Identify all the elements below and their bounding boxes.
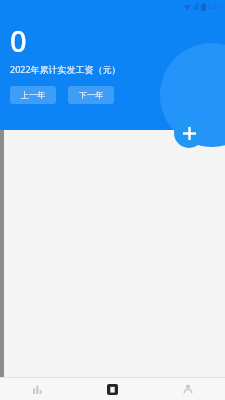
staticText: 8:27	[208, 3, 220, 11]
button[interactable]: 下一年	[68, 86, 114, 104]
button[interactable]: Salary	[75, 378, 150, 400]
button[interactable]: Statistics	[0, 378, 75, 400]
staticText: 0	[10, 21, 27, 60]
button[interactable]: Profile	[150, 378, 225, 400]
button[interactable]: 上一年	[10, 86, 56, 104]
button[interactable]: Add salary record	[174, 118, 204, 148]
staticText: 上一年	[21, 90, 45, 100]
staticText: 下一年	[79, 90, 103, 100]
staticText: 2022年累计实发工资（元）	[10, 63, 121, 75]
